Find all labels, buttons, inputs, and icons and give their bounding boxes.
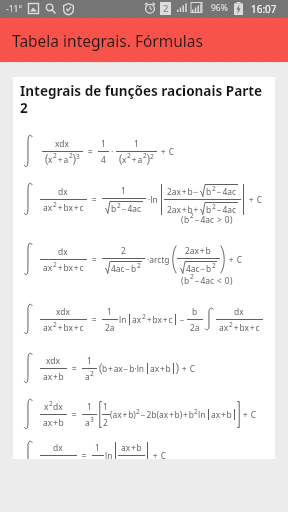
staticText: xdx	[56, 306, 70, 317]
button[interactable]: xdx	[20, 295, 270, 343]
staticText: x	[48, 154, 53, 165]
staticText: dx	[53, 442, 63, 453]
staticText: + C	[160, 146, 174, 157]
staticText: 2	[137, 261, 141, 270]
staticText: 2	[53, 320, 57, 329]
staticText: ln	[119, 314, 127, 325]
staticText: 1	[103, 401, 108, 412]
staticText: x	[122, 154, 127, 165]
staticText: (	[181, 275, 184, 286]
staticText: 2	[150, 152, 154, 161]
staticText: a	[85, 371, 90, 382]
staticText: 1	[107, 306, 112, 317]
staticText: 2	[117, 201, 121, 210]
staticText: + bx + c	[233, 322, 260, 333]
staticText: b + ax − b·ln	[102, 363, 145, 374]
staticText: Integrais de funções racionais Parte 2	[20, 82, 270, 117]
staticText: Tabela integrais. Fórmulas	[12, 30, 203, 51]
staticText: ln	[198, 409, 206, 420]
staticText: dx	[53, 401, 63, 412]
staticText: 2	[127, 151, 131, 160]
staticText: ln	[105, 450, 113, 459]
staticText: 2	[229, 320, 233, 329]
staticText: 2	[53, 200, 57, 209]
staticText: ax + b	[211, 409, 232, 420]
staticText: 2ax + b	[185, 245, 211, 256]
staticText: 1	[121, 185, 126, 196]
staticText: − 4ac	[216, 186, 237, 197]
staticText: ax	[43, 262, 53, 273]
staticText: )	[230, 275, 233, 286]
staticText: xdx	[46, 355, 60, 366]
other: Gallery	[28, 3, 39, 14]
staticText: 1	[87, 355, 92, 366]
other: Alarm	[144, 2, 156, 14]
staticText: 2	[212, 184, 216, 193]
staticText: 2a	[190, 322, 200, 333]
staticText: 4	[101, 154, 106, 165]
staticText: 1	[95, 442, 100, 453]
staticText: 16:07	[251, 2, 277, 16]
staticText: + C	[228, 254, 242, 265]
staticText: ·	[111, 146, 114, 157]
other: Battery charging	[234, 2, 243, 15]
staticText: + C	[248, 194, 262, 205]
staticText: ·ln	[148, 194, 158, 205]
staticText: − 4ac < 0	[194, 275, 230, 286]
button[interactable]: dx	[20, 431, 270, 459]
staticText: =	[87, 146, 94, 157]
staticText: =	[71, 409, 78, 420]
staticText: 2ax + b +	[167, 204, 200, 215]
staticText: ax	[43, 202, 53, 213]
staticText: 2	[212, 261, 216, 270]
staticText: 2	[53, 260, 57, 269]
staticText: b	[184, 214, 190, 225]
staticText: 2	[194, 407, 198, 416]
staticText: x	[44, 401, 49, 412]
staticText: − 4ac	[121, 203, 142, 214]
staticText: dx	[58, 246, 68, 257]
staticText: ax + b	[43, 417, 64, 428]
staticText: (ax + b)	[110, 409, 136, 420]
button[interactable]: dx	[20, 175, 270, 235]
staticText: ax + b	[43, 371, 64, 382]
other: Search	[45, 3, 56, 14]
staticText: − 4ac > 0	[194, 214, 230, 225]
staticText: dx	[58, 186, 68, 197]
staticText: + bx + c	[57, 322, 84, 333]
other: Security	[63, 3, 74, 15]
button[interactable]: xdx	[20, 126, 270, 175]
staticText: =	[91, 254, 98, 265]
staticText: )	[230, 214, 233, 225]
staticText: −	[179, 314, 186, 325]
staticText: ax	[132, 314, 142, 325]
staticText: + a	[131, 154, 143, 165]
staticText: 3	[76, 152, 80, 161]
staticText: 2a	[105, 322, 115, 333]
staticText: + bx + c	[57, 202, 84, 213]
staticText: 1	[101, 138, 106, 149]
staticText: 2	[190, 211, 194, 220]
staticText: 2	[90, 369, 94, 378]
staticText: 4ac − b	[186, 263, 212, 274]
button[interactable]: x	[20, 389, 270, 431]
staticText: dx	[234, 306, 244, 317]
staticText: 1	[134, 138, 139, 149]
staticText: 96%	[211, 2, 228, 14]
staticText: ax + b	[150, 363, 171, 374]
staticText: 2	[212, 202, 216, 211]
staticText: (	[181, 214, 184, 225]
staticText: ax	[219, 322, 229, 333]
staticText: − 2b(ax + b) + b	[140, 409, 194, 420]
button[interactable]: dx	[20, 235, 270, 295]
staticText: 2	[163, 2, 169, 15]
staticText: ax	[43, 322, 53, 333]
staticText: 2	[53, 151, 57, 160]
staticText: =	[71, 363, 78, 374]
button[interactable]: xdx	[20, 343, 270, 389]
staticText: =	[91, 194, 98, 205]
button[interactable]: Tabela integrais. Fórmulas	[0, 18, 288, 62]
